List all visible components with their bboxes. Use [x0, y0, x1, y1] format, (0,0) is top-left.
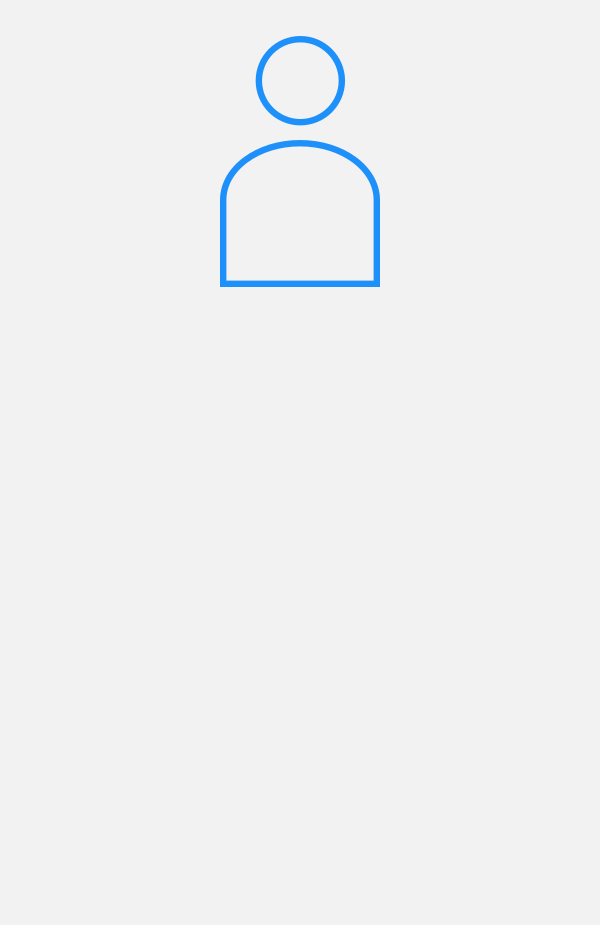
button[interactable]: Profile photo	[220, 37, 380, 287]
